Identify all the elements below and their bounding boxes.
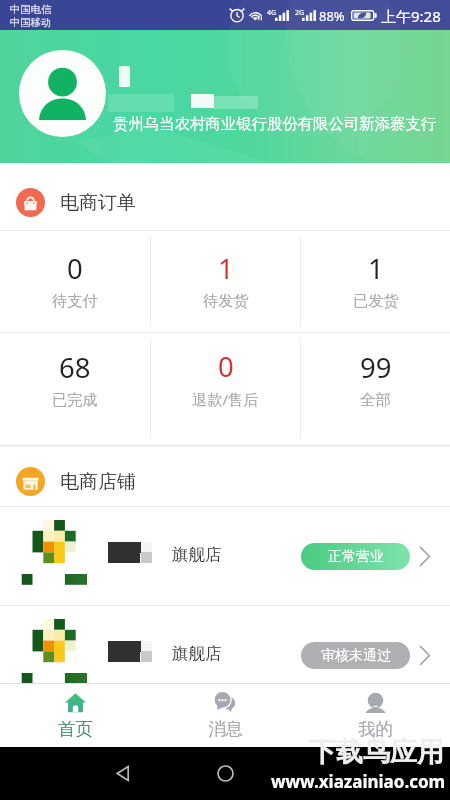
staticText: 消息	[208, 718, 243, 740]
other: Home	[217, 765, 234, 782]
staticText: 上午9:28	[381, 6, 441, 26]
button[interactable]: 电商订单	[0, 163, 450, 230]
staticText: 待发货	[203, 291, 249, 310]
button[interactable]: 电商店铺	[0, 447, 450, 506]
staticText: 已完成	[52, 390, 98, 409]
staticText: 已发货	[353, 291, 399, 310]
staticText: 中国移动	[10, 16, 52, 29]
staticText: 全部	[360, 390, 391, 409]
staticText: www.xiazainiao.com	[271, 770, 446, 793]
button[interactable]: 旗舰店	[0, 606, 450, 683]
staticText: 99	[360, 349, 392, 386]
button[interactable]: 旗舰店	[0, 507, 450, 605]
staticText: 首页	[58, 718, 93, 740]
button[interactable]: 0	[151, 333, 300, 444]
button[interactable]: 正常营业	[301, 543, 410, 570]
staticText: 4G	[267, 8, 277, 18]
staticText: 电商店铺	[60, 470, 136, 494]
button[interactable]: 首页	[0, 684, 150, 747]
staticText: 旗舰店	[172, 643, 222, 664]
staticText: 退款/售后	[192, 389, 259, 410]
other: Back	[113, 764, 132, 783]
staticText: 旗舰店	[172, 544, 222, 565]
button[interactable]: 我的	[300, 684, 450, 747]
staticText: 正常营业	[328, 548, 384, 566]
staticText: 我的	[358, 718, 393, 740]
staticText: 中国电信	[10, 3, 52, 16]
button[interactable]: 0	[0, 231, 150, 332]
staticText: 电商订单	[60, 191, 136, 215]
staticText: 0	[218, 348, 234, 385]
staticText: 1	[218, 250, 234, 287]
button[interactable]: 99	[301, 333, 450, 444]
staticText: 88%	[319, 7, 345, 25]
other: Open shop	[419, 546, 431, 567]
button[interactable]: 1	[301, 231, 450, 332]
button[interactable]: 审核未通过	[301, 642, 410, 669]
staticText: 2G	[295, 8, 305, 18]
staticText: 68	[59, 349, 91, 386]
staticText: 下载鸟应用	[309, 735, 444, 769]
staticText: 贵州乌当农村商业银行股份有限公司新添寨支行	[113, 114, 437, 133]
staticText: 待支付	[52, 291, 98, 310]
button[interactable]: Profile avatar	[19, 50, 106, 137]
button[interactable]: 1	[151, 231, 300, 332]
other: Open shop	[419, 645, 431, 666]
staticText: 0	[67, 250, 83, 287]
button[interactable]: 68	[0, 333, 150, 444]
button[interactable]: 消息	[150, 684, 300, 747]
staticText: 1	[368, 250, 384, 287]
staticText: 审核未通过	[321, 647, 391, 665]
